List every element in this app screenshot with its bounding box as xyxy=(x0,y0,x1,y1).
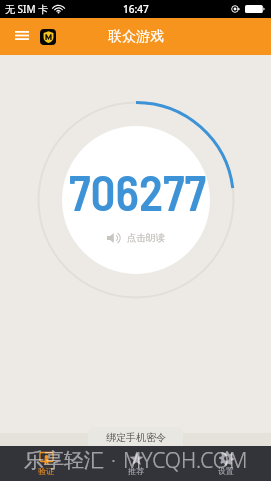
button[interactable]: 推荐 xyxy=(91,446,181,481)
staticText: 点击朗读 xyxy=(127,232,165,244)
staticText: 推荐 xyxy=(128,466,144,476)
button[interactable]: Menu xyxy=(12,23,32,47)
staticText: 验证 xyxy=(38,466,54,476)
staticText: 联众游戏 xyxy=(108,28,164,46)
staticText: 无 SIM 卡 xyxy=(5,2,49,16)
staticText: · xyxy=(111,447,116,474)
button[interactable]: 验证 xyxy=(0,446,91,481)
staticText: MYCQH.COM xyxy=(123,446,248,475)
button[interactable]: 设置 xyxy=(181,446,271,481)
button[interactable]: 绑定手机密令 xyxy=(88,427,183,446)
staticText: 706277 xyxy=(69,162,207,221)
staticText: 绑定手机密令 xyxy=(106,431,166,444)
button[interactable]: 706277 xyxy=(62,126,210,274)
staticText: 设置 xyxy=(218,466,234,476)
staticText: 16:47 xyxy=(123,2,149,16)
button[interactable]: Account xyxy=(40,29,56,45)
staticText: 乐享轻汇 xyxy=(24,448,104,473)
